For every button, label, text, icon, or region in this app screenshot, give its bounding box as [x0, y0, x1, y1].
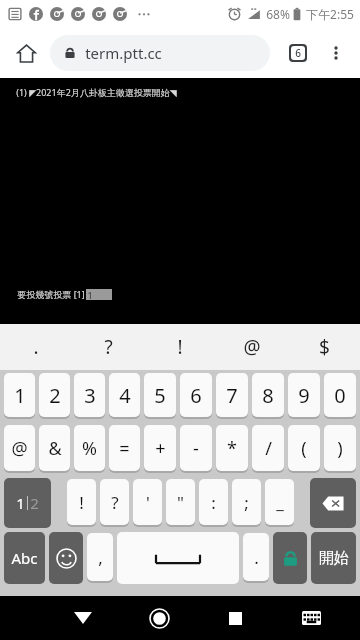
staticText: " [177, 491, 184, 514]
button[interactable]: 6 [180, 373, 212, 417]
button[interactable]: _ [265, 479, 294, 525]
staticText: . [33, 334, 39, 360]
button[interactable]: Tabs: 6 [278, 33, 318, 73]
button[interactable]: Change keyboard [273, 596, 349, 640]
staticText: 2 [49, 382, 61, 409]
staticText: ? [111, 491, 119, 514]
staticText: 1 [14, 382, 26, 409]
button[interactable]: 8 [252, 373, 284, 417]
staticText: 開始 [319, 549, 349, 568]
staticText: & [48, 436, 62, 461]
button[interactable]: - [180, 425, 212, 471]
staticText: @ [243, 334, 261, 360]
button[interactable]: ) [324, 425, 356, 471]
staticText: = [119, 436, 130, 461]
button[interactable]: 2 [39, 373, 70, 417]
staticText: 5 [154, 382, 166, 409]
button[interactable]: ! [144, 324, 216, 370]
button[interactable]: , [87, 533, 113, 581]
button[interactable]: " [166, 479, 195, 525]
staticText: + [155, 436, 166, 461]
button[interactable]: : [199, 479, 228, 525]
button[interactable]: 1 [4, 373, 35, 417]
button[interactable]: @ [4, 425, 35, 471]
button[interactable]: 3 [74, 373, 105, 417]
button[interactable]: * [216, 425, 248, 471]
staticText: % [82, 436, 97, 461]
button[interactable]: ! [67, 479, 96, 525]
button[interactable]: Home [6, 33, 46, 73]
staticText: * [227, 436, 237, 461]
button[interactable]: ( [288, 425, 320, 471]
button[interactable]: . [0, 324, 72, 370]
button[interactable]: Backspace [310, 478, 356, 528]
button[interactable]: ' [133, 479, 162, 525]
staticText: 8 [262, 382, 274, 409]
button[interactable]: + [144, 425, 176, 471]
staticText: 1 [87, 289, 93, 300]
staticText: 68% [266, 6, 290, 22]
staticText: / [265, 436, 272, 461]
staticText: ' [146, 491, 150, 514]
staticText: (1) ◤2021年2月八卦板主徵選投票開始◥ [16, 86, 177, 98]
staticText: ! [79, 491, 84, 514]
staticText: 1 [16, 493, 25, 513]
button[interactable]: ? [72, 324, 144, 370]
button[interactable]: Secure input [273, 532, 307, 584]
staticText: ! [177, 334, 183, 360]
button[interactable]: Hide keyboard [45, 596, 121, 640]
staticText: term.ptt.cc [85, 43, 162, 63]
button[interactable]: & [39, 425, 70, 471]
button[interactable]: Home [121, 596, 197, 640]
button[interactable]: Switch symbol page [4, 478, 51, 528]
button[interactable]: = [109, 425, 140, 471]
button[interactable]: 4 [109, 373, 140, 417]
button[interactable]: 開始 [311, 532, 356, 584]
staticText: 3 [84, 382, 96, 409]
button[interactable]: @ [216, 324, 288, 370]
staticText: : [211, 491, 216, 514]
button[interactable]: More options [318, 35, 354, 71]
staticText: . [254, 546, 259, 569]
staticText: 6 [295, 46, 301, 60]
staticText: 7 [226, 382, 238, 409]
staticText: ( [301, 436, 307, 461]
staticText: Abc [11, 548, 38, 568]
button[interactable]: . [243, 533, 269, 581]
staticText: @ [11, 436, 28, 461]
button[interactable]: ? [100, 479, 129, 525]
button[interactable]: Space [117, 532, 239, 584]
staticText: _ [276, 491, 284, 514]
button[interactable]: Emoji [49, 532, 83, 584]
button[interactable]: % [74, 425, 105, 471]
button[interactable]: Recent apps [197, 596, 273, 640]
button[interactable]: 0 [324, 373, 356, 417]
button[interactable]: 7 [216, 373, 248, 417]
button[interactable]: 9 [288, 373, 320, 417]
staticText: 4 [119, 382, 131, 409]
staticText: 要投幾號投票 [1] [16, 288, 86, 300]
staticText: ) [337, 436, 343, 461]
button[interactable]: / [252, 425, 284, 471]
staticText: 下午2:55 [306, 6, 354, 22]
staticText: , [98, 546, 103, 569]
button[interactable]: 5 [144, 373, 176, 417]
button[interactable]: Abc [4, 532, 45, 584]
staticText: - [193, 436, 199, 461]
button[interactable]: term.ptt.cc [50, 35, 270, 71]
staticText: 6 [190, 382, 202, 409]
staticText: 0 [334, 382, 346, 409]
staticText: 9 [298, 382, 310, 409]
staticText: $ [319, 334, 330, 360]
staticText: ; [244, 491, 249, 514]
button[interactable]: ; [232, 479, 261, 525]
staticText: 2 [30, 493, 39, 513]
staticText: ? [104, 334, 113, 360]
button[interactable]: $ [288, 324, 360, 370]
